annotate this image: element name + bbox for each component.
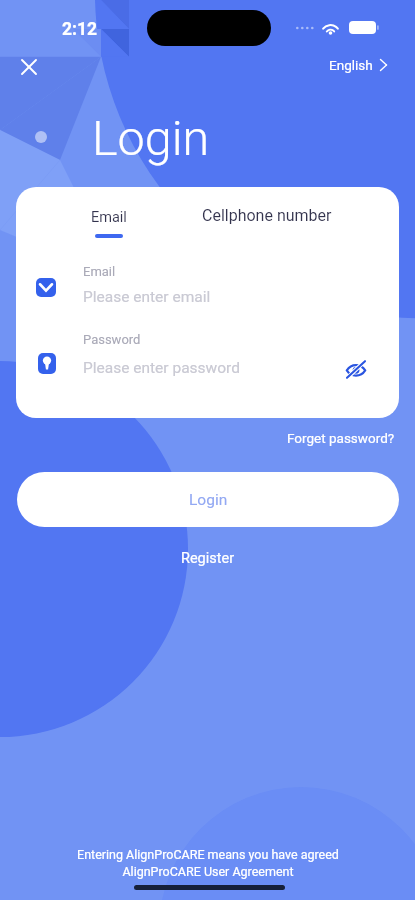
button[interactable]: Register	[181, 550, 235, 567]
button[interactable]: AlignProCARE User Agreement	[122, 864, 294, 879]
staticText: 2:12	[62, 19, 98, 40]
button[interactable]: Show password	[340, 353, 372, 385]
staticText: Please enter password	[83, 359, 240, 377]
button[interactable]: Close	[11, 49, 47, 85]
button[interactable]: Email	[74, 209, 144, 261]
staticText: Email	[91, 209, 127, 226]
staticText: Login	[189, 491, 228, 509]
button[interactable]: Cellphone number	[186, 206, 348, 236]
staticText: Cellphone number	[202, 206, 332, 225]
staticText: Register	[181, 550, 235, 567]
staticText: Login	[92, 110, 210, 167]
button[interactable]: Forget password?	[287, 430, 395, 446]
staticText: English	[329, 57, 373, 73]
staticText: Forget password?	[287, 430, 395, 446]
button[interactable]: English	[329, 57, 387, 73]
button[interactable]: Login	[17, 472, 399, 527]
staticText: Please enter email	[83, 288, 211, 306]
staticText: Password	[83, 332, 141, 347]
staticText: Email	[83, 264, 116, 279]
staticText: Entering AlignProCARE means you have agr…	[77, 847, 339, 862]
